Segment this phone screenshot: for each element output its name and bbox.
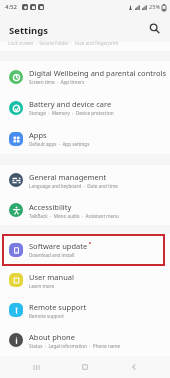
staticText: Settings <box>9 24 48 37</box>
button[interactable]: Search <box>145 19 163 37</box>
button[interactable]: Remote support <box>0 295 170 325</box>
staticText: Storage · Memory · Device protection <box>29 110 114 116</box>
button[interactable]: Accessibility <box>0 195 170 225</box>
button[interactable]: About phone <box>0 325 170 355</box>
staticText: Download and install <box>29 252 75 258</box>
button[interactable]: Apps <box>0 123 170 154</box>
staticText: Remote support <box>29 302 87 312</box>
staticText: Lock screen · Secure Folder · Face and f… <box>8 40 119 46</box>
staticText: 25% <box>149 3 161 11</box>
staticText: Remote support <box>29 313 64 319</box>
staticText: Accessibility <box>29 202 72 212</box>
button[interactable]: Home <box>72 356 98 378</box>
staticText: Screen time · App timers <box>29 79 85 85</box>
staticText: Learn more <box>29 283 54 289</box>
staticText: 4:52 <box>5 3 17 11</box>
staticText: Status · Legal information · Phone name <box>29 343 121 349</box>
staticText: TalkBack · Mono audio · Assistant menu <box>29 213 119 219</box>
staticText: Digital Wellbeing and parental controls <box>29 68 166 78</box>
button[interactable]: Battery and device care <box>0 92 170 123</box>
staticText: General management <box>29 172 107 182</box>
button[interactable]: General management <box>0 165 170 195</box>
staticText: Default apps · App settings <box>29 141 90 147</box>
staticText: Software update <box>29 241 88 251</box>
staticText: About phone <box>29 332 75 342</box>
staticText: Language and keyboard · Date and time <box>29 183 118 189</box>
button[interactable]: User manual <box>0 265 170 295</box>
staticText: User manual <box>29 272 74 282</box>
button[interactable]: Recents <box>23 356 49 378</box>
staticText: Battery and device care <box>29 99 112 109</box>
staticText: Apps <box>29 130 47 140</box>
button[interactable]: Back <box>121 356 147 378</box>
button[interactable]: Software update <box>0 234 170 265</box>
button[interactable]: Digital Wellbeing and parental controls <box>0 61 170 92</box>
